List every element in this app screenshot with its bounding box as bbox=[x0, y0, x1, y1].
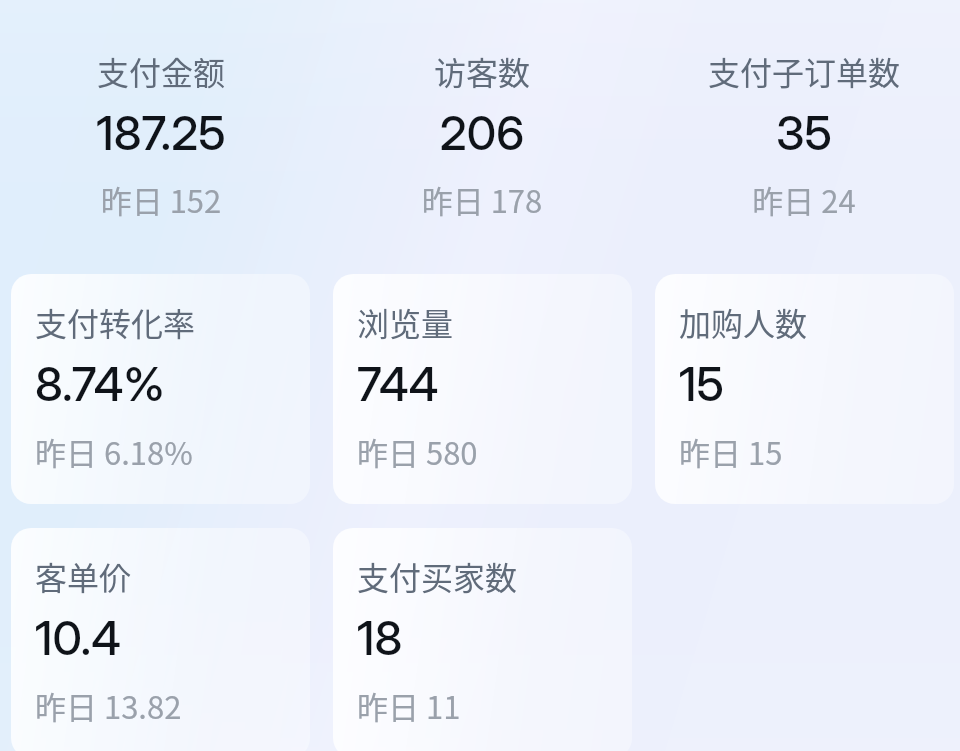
staticText: 客单价 bbox=[35, 553, 132, 599]
button[interactable]: 支付子订单数 bbox=[643, 0, 960, 250]
staticText: 访客数 bbox=[321, 48, 643, 94]
staticText: 昨日 6.18% bbox=[35, 429, 193, 474]
staticText: 35 bbox=[643, 104, 960, 161]
staticText: 8.74% bbox=[35, 355, 165, 412]
staticText: 昨日 178 bbox=[321, 177, 643, 222]
staticText: 18 bbox=[357, 609, 403, 666]
button[interactable]: 客单价 bbox=[11, 528, 310, 751]
staticText: 昨日 15 bbox=[679, 429, 783, 474]
staticText: 昨日 11 bbox=[357, 683, 461, 728]
staticText: 10.4 bbox=[35, 609, 121, 666]
button[interactable]: 浏览量 bbox=[333, 274, 632, 504]
button[interactable]: 访客数 bbox=[321, 0, 643, 250]
staticText: 昨日 13.82 bbox=[35, 683, 182, 728]
staticText: 加购人数 bbox=[679, 299, 808, 345]
button[interactable]: 支付买家数 bbox=[333, 528, 632, 751]
staticText: 昨日 152 bbox=[0, 177, 322, 222]
staticText: 支付金额 bbox=[0, 48, 322, 94]
staticText: 昨日 24 bbox=[643, 177, 960, 222]
staticText: 支付子订单数 bbox=[643, 48, 960, 94]
button[interactable]: 支付金额 bbox=[0, 0, 322, 250]
staticText: 15 bbox=[679, 355, 724, 412]
staticText: 支付买家数 bbox=[357, 553, 518, 599]
staticText: 744 bbox=[357, 355, 439, 412]
button[interactable]: 支付转化率 bbox=[11, 274, 310, 504]
staticText: 187.25 bbox=[0, 104, 322, 161]
staticText: 206 bbox=[321, 104, 643, 161]
staticText: 浏览量 bbox=[357, 299, 454, 345]
button[interactable]: 加购人数 bbox=[655, 274, 954, 504]
staticText: 支付转化率 bbox=[35, 299, 196, 345]
staticText: 昨日 580 bbox=[357, 429, 478, 474]
